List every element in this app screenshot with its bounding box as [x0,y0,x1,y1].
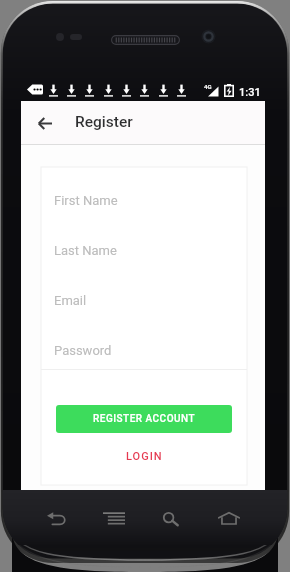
button[interactable]: Menu [97,506,131,532]
button[interactable]: First Name [41,178,247,222]
button[interactable]: Password [41,328,247,372]
staticText: 1:31 [239,86,261,99]
button[interactable]: Home [212,506,246,531]
button[interactable]: Back [41,506,72,531]
staticText: 4G [204,83,212,90]
button[interactable]: Search [157,506,185,532]
staticText: Register [75,113,133,131]
staticText: Email [54,293,87,308]
button[interactable]: Email [41,278,247,322]
staticText: First Name [54,193,118,208]
staticText: LOGIN [126,450,163,463]
button[interactable]: Back [31,109,59,137]
button[interactable]: REGISTER ACCOUNT [56,405,232,433]
button[interactable]: Last Name [41,228,247,272]
button[interactable]: LOGIN [41,445,247,467]
staticText: Last Name [54,243,117,258]
staticText: REGISTER ACCOUNT [93,413,196,425]
staticText: Password [54,343,112,358]
